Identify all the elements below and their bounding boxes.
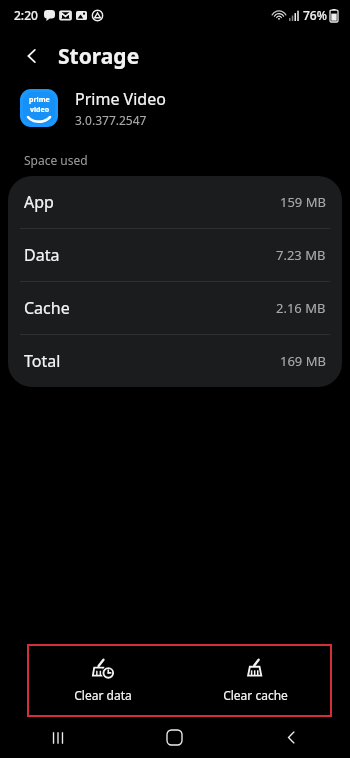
staticText: 3.0.377.2547	[75, 112, 147, 128]
staticText: 2.16 MB	[276, 299, 326, 317]
staticText: 2:20	[14, 7, 38, 23]
button[interactable]: Clear data	[27, 650, 179, 711]
staticText: 159 MB	[280, 193, 326, 211]
button[interactable]: Cache	[8, 282, 342, 334]
button[interactable]: Back	[16, 40, 48, 72]
button[interactable]: Data	[8, 229, 342, 281]
staticText: 7.23 MB	[276, 246, 326, 264]
staticText: Space used	[24, 152, 88, 168]
staticText: prime	[29, 95, 50, 105]
button[interactable]: App	[8, 176, 342, 228]
button[interactable]: Home	[116, 717, 233, 758]
staticText: video	[30, 105, 50, 115]
button[interactable]: Clear cache	[179, 650, 332, 711]
staticText: Total	[24, 350, 61, 372]
other: Clear data	[92, 658, 114, 680]
button[interactable]: Recents	[0, 717, 116, 758]
staticText: Clear cache	[223, 687, 288, 703]
other: Clear cache	[245, 658, 267, 680]
staticText: 76%	[303, 7, 327, 23]
staticText: Storage	[58, 42, 140, 71]
staticText: Clear data	[74, 687, 132, 703]
staticText: Cache	[24, 297, 70, 319]
button[interactable]: Total	[8, 335, 342, 387]
staticText: Data	[24, 244, 60, 266]
staticText: Prime Video	[75, 88, 166, 110]
staticText: 169 MB	[280, 352, 326, 370]
button[interactable]: Back	[233, 717, 350, 758]
staticText: App	[24, 191, 54, 213]
